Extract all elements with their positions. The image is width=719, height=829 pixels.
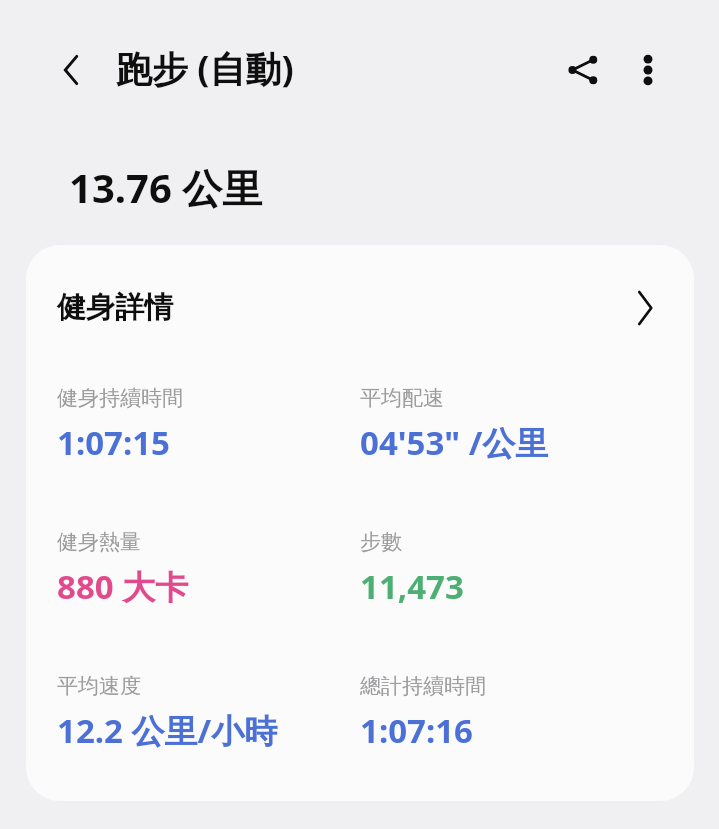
staticText: 步數 — [360, 529, 402, 555]
staticText: 04'53" /公里 — [360, 420, 549, 465]
button[interactable]: Share — [559, 46, 607, 94]
button[interactable]: 健身詳情 — [26, 245, 694, 370]
staticText: 健身熱量 — [57, 529, 141, 555]
staticText: 健身持續時間 — [57, 385, 183, 411]
staticText: 健身詳情 — [57, 289, 173, 326]
staticText: 平均配速 — [360, 385, 444, 411]
staticText: 總計持續時間 — [360, 673, 486, 699]
staticText: 11,473 — [360, 564, 464, 609]
staticText: 13.76 公里 — [69, 160, 263, 215]
staticText: 1:07:15 — [57, 420, 170, 465]
button[interactable]: More options — [624, 46, 672, 94]
staticText: 1:07:16 — [360, 708, 473, 753]
button[interactable]: Back — [47, 46, 95, 94]
staticText: 跑步 (自動) — [116, 44, 294, 93]
staticText: 880 大卡 — [57, 564, 189, 609]
staticText: 平均速度 — [57, 673, 141, 699]
staticText: 12.2 公里/小時 — [57, 708, 278, 753]
